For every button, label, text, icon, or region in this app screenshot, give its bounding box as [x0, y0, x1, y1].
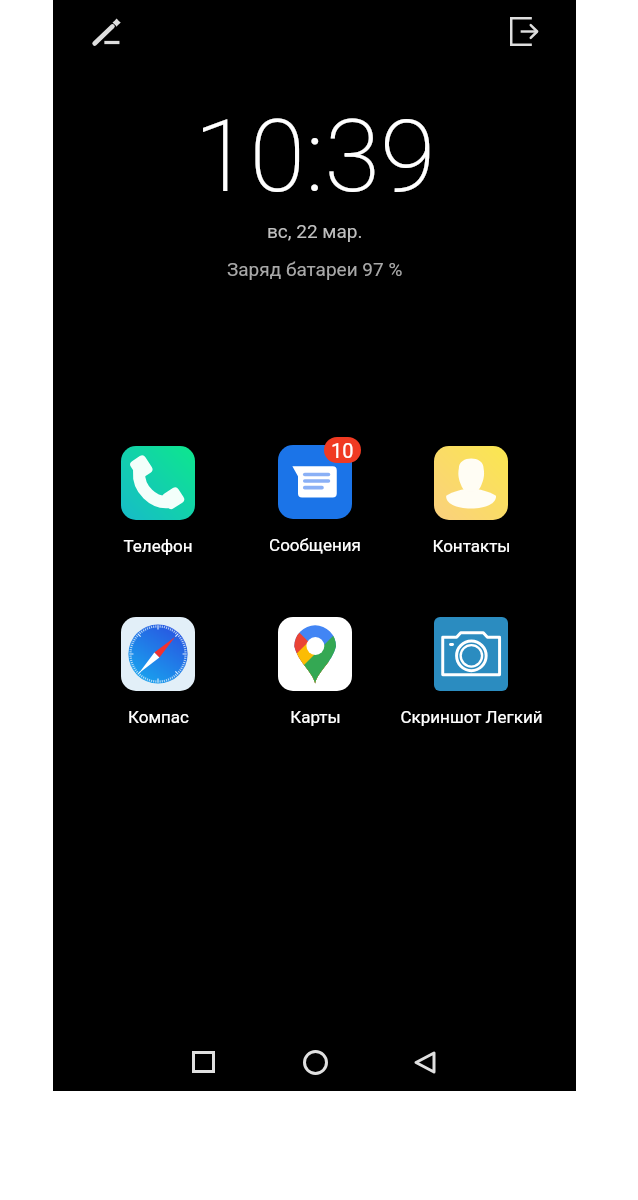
staticText: Сообщения [269, 535, 361, 555]
staticText: Компас [128, 707, 189, 727]
staticText: вс, 22 мар. [267, 220, 363, 242]
button[interactable]: Компас [80, 611, 236, 727]
button[interactable]: Exit [498, 5, 550, 57]
button[interactable]: Телефон [80, 440, 236, 556]
staticText: Скриншот Легкий [400, 707, 543, 727]
staticText: Заряд батареи 97 % [227, 258, 403, 280]
staticText: Карты [290, 707, 341, 727]
staticText: Контакты [432, 536, 511, 556]
staticText: 10 [331, 439, 354, 462]
button[interactable]: Контакты [393, 440, 549, 556]
button[interactable]: Recents [169, 1028, 237, 1096]
button[interactable]: Карты [237, 611, 393, 727]
button[interactable]: Back [391, 1028, 459, 1096]
button[interactable]: Edit wallpaper [80, 6, 132, 58]
button[interactable]: 10 [237, 439, 393, 555]
button[interactable]: Home [281, 1028, 349, 1096]
staticText: 10:39 [194, 97, 436, 215]
button[interactable]: Скриншот Легкий [393, 611, 549, 727]
staticText: Телефон [123, 536, 193, 556]
